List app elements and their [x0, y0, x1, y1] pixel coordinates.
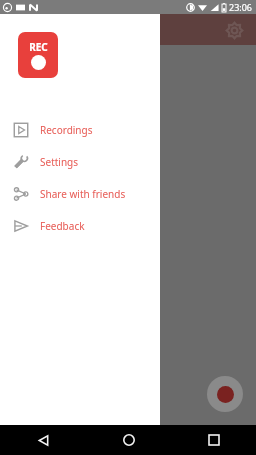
button[interactable]: Share with friends — [0, 178, 160, 210]
button[interactable]: Recents — [171, 425, 256, 455]
staticText: REC — [29, 40, 48, 54]
staticText: 23:06 — [229, 1, 253, 13]
button[interactable]: Settings — [0, 146, 160, 178]
button[interactable]: Recordings — [0, 114, 160, 146]
staticText: Settings — [40, 155, 79, 169]
staticText: Share with friends — [40, 187, 126, 201]
button[interactable]: Record — [207, 376, 243, 412]
staticText: Recordings — [40, 123, 93, 137]
button[interactable]: App logo — [18, 32, 58, 78]
button[interactable]: Back — [0, 425, 86, 455]
staticText: Feedback — [40, 219, 85, 233]
button[interactable]: Settings — [220, 16, 248, 44]
button[interactable]: Home — [86, 425, 171, 455]
button[interactable]: Feedback — [0, 210, 160, 242]
